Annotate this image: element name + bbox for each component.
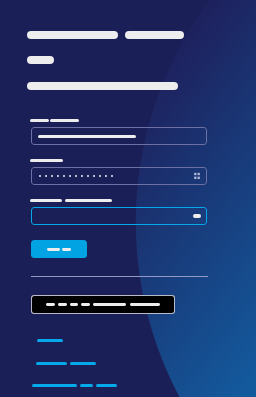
button[interactable] bbox=[36, 358, 96, 368]
button[interactable]: Show password bbox=[193, 172, 201, 180]
button[interactable] bbox=[31, 207, 207, 225]
button[interactable]: Show password bbox=[31, 167, 207, 185]
button[interactable] bbox=[37, 335, 63, 345]
button[interactable] bbox=[31, 127, 207, 145]
button[interactable] bbox=[32, 296, 174, 313]
button[interactable] bbox=[31, 240, 87, 258]
button[interactable] bbox=[32, 380, 119, 390]
